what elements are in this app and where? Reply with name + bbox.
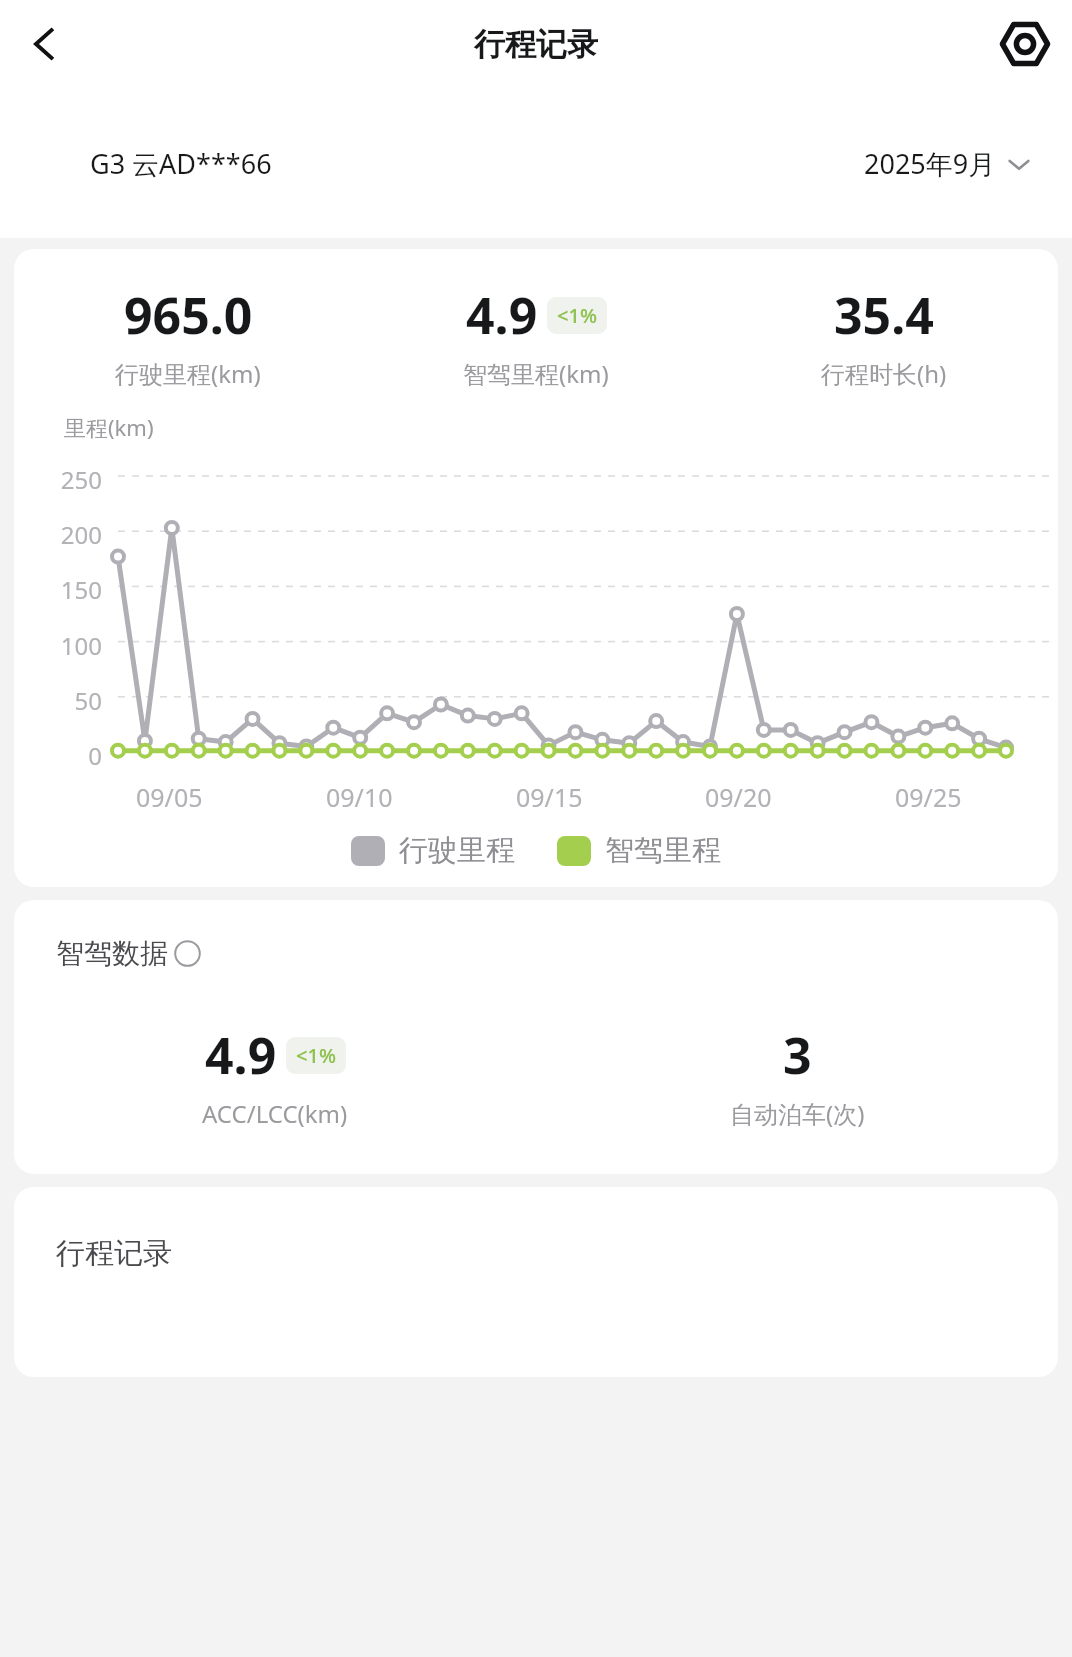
staticText: 150 (14, 573, 102, 606)
staticText: 09/15 (516, 780, 583, 814)
button[interactable]: Back (14, 13, 76, 75)
staticText: 行程记录 (56, 1235, 172, 1272)
staticText: 行程记录 (474, 25, 598, 64)
staticText: 09/10 (326, 780, 393, 814)
button[interactable]: 行驶里程 (351, 832, 515, 869)
staticText: 智驾数据 (56, 936, 168, 971)
staticText: 里程(km) (64, 412, 154, 442)
staticText: 自动泊车(次) (730, 1097, 865, 1130)
staticText: <1% (296, 1042, 336, 1069)
staticText: ACC/LCC(km) (202, 1097, 348, 1130)
staticText: 4.9 (466, 281, 538, 349)
button[interactable]: 2025年9月 (864, 145, 1032, 182)
button[interactable]: 4.9 (14, 1021, 536, 1130)
button[interactable]: 4.9 (362, 281, 710, 390)
staticText: 2025年9月 (864, 145, 996, 182)
button[interactable]: 3 (536, 1021, 1058, 1130)
staticText: 50 (14, 684, 102, 717)
staticText: 0 (14, 739, 102, 772)
staticText: 965.0 (124, 281, 253, 349)
staticText: 09/20 (705, 780, 772, 814)
staticText: 09/05 (136, 780, 203, 814)
other: Help (174, 940, 201, 967)
staticText: 35.4 (834, 281, 934, 349)
staticText: 行程时长(h) (821, 357, 947, 390)
staticText: 行驶里程 (399, 832, 515, 869)
staticText: 4.9 (205, 1021, 277, 1089)
staticText: 智驾里程(km) (463, 357, 609, 390)
staticText: <1% (557, 302, 597, 329)
staticText: 09/25 (895, 780, 962, 814)
staticText: G3 云AD***66 (90, 145, 272, 182)
button[interactable]: Settings (994, 13, 1056, 75)
staticText: 200 (14, 518, 102, 551)
staticText: 3 (783, 1021, 812, 1089)
button[interactable]: 35.4 (710, 281, 1058, 390)
button[interactable]: 智驾数据 (56, 936, 201, 971)
staticText: 行驶里程(km) (115, 357, 261, 390)
staticText: 100 (14, 629, 102, 662)
staticText: 250 (14, 463, 102, 496)
staticText: 智驾里程 (605, 832, 721, 869)
button[interactable]: 智驾里程 (557, 832, 721, 869)
button[interactable]: 965.0 (14, 281, 362, 390)
